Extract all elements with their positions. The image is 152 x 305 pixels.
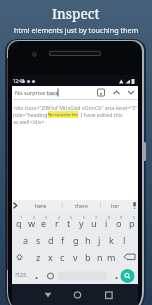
button[interactable]: a <box>20 231 31 248</box>
staticText: j <box>98 234 101 246</box>
staticText: 7 <box>95 215 98 220</box>
staticText: e <box>41 217 47 229</box>
staticText: i <box>105 217 108 229</box>
staticText: a <box>23 234 29 246</box>
button[interactable]: 3 <box>38 214 49 231</box>
staticText: 9 <box>120 215 123 220</box>
button[interactable]: 9 <box>113 214 124 231</box>
staticText: 2 <box>33 215 36 220</box>
staticText: here <box>35 202 47 209</box>
button[interactable]: c <box>57 248 68 265</box>
staticText: x <box>48 251 53 263</box>
button[interactable]: v <box>70 248 81 265</box>
button[interactable]: 7 <box>88 214 99 231</box>
staticText: h <box>85 234 91 246</box>
button[interactable]: here <box>20 200 62 211</box>
staticText: her <box>111 202 120 209</box>
staticText: l <box>123 234 126 246</box>
staticText: q <box>16 217 22 229</box>
button[interactable]: f <box>57 231 68 248</box>
staticText: y <box>79 217 84 229</box>
staticText: g <box>73 234 79 246</box>
staticText: p <box>129 217 135 229</box>
staticText: 6 <box>83 215 86 220</box>
button[interactable]: m <box>106 248 117 265</box>
staticText: 8 <box>108 215 111 220</box>
staticText: 1 <box>20 215 23 220</box>
staticText: No surprise here <box>15 89 59 96</box>
staticText: 4 <box>58 215 61 220</box>
button[interactable]: h <box>82 231 93 248</box>
button[interactable]: g <box>70 231 81 248</box>
staticText: v <box>73 251 78 263</box>
staticText: No surprise here <box>48 112 78 118</box>
button[interactable]: there <box>62 200 100 211</box>
button[interactable] <box>96 284 138 305</box>
button[interactable]: z <box>33 248 44 265</box>
button[interactable]: No surprise here <box>12 86 138 99</box>
staticText: Inspect <box>52 5 100 23</box>
staticText: f <box>61 234 65 246</box>
button[interactable]: 8 <box>101 214 112 231</box>
button[interactable]: 2 <box>26 214 37 231</box>
button[interactable]: her <box>100 200 131 211</box>
button[interactable]: 0 <box>126 214 137 231</box>
staticText: k <box>109 234 114 246</box>
button[interactable]: 1 <box>13 214 24 231</box>
staticText: c <box>60 251 65 263</box>
button[interactable] <box>12 284 54 305</box>
staticText: n <box>97 251 103 263</box>
button[interactable]: s <box>33 231 44 248</box>
button[interactable] <box>54 284 96 305</box>
button[interactable]: b <box>82 248 93 265</box>
button[interactable]: d <box>45 231 56 248</box>
button[interactable]: n <box>94 248 105 265</box>
staticText: 3 <box>45 215 48 220</box>
staticText: <div class="2lBHuf MUxGbd vOnnCb" aria-l… <box>13 104 138 111</box>
staticText: w <box>28 217 36 229</box>
staticText: role="heading"> <box>13 111 48 118</box>
button[interactable]: j <box>94 231 105 248</box>
staticText: m <box>107 251 116 263</box>
staticText: ?123 <box>15 272 26 279</box>
staticText: u <box>91 217 97 229</box>
staticText: html elements just by touching them <box>14 25 139 35</box>
staticText: . I have edited this <box>78 111 123 118</box>
staticText: z <box>36 251 41 263</box>
button[interactable]: l <box>119 231 130 248</box>
staticText: d <box>48 234 54 246</box>
button[interactable]: 5 <box>63 214 74 231</box>
staticText: r <box>55 217 59 229</box>
staticText: s <box>36 234 41 246</box>
staticText: there <box>75 202 88 209</box>
staticText: as well</div> <box>13 118 45 125</box>
staticText: o <box>116 217 122 229</box>
staticText: 5 <box>70 215 73 220</box>
staticText: t <box>67 217 71 229</box>
staticText: b <box>85 251 91 263</box>
button[interactable]: k <box>106 231 117 248</box>
staticText: 0 <box>133 215 136 220</box>
button[interactable]: 6 <box>76 214 87 231</box>
button[interactable]: x <box>45 248 56 265</box>
staticText: 12:43 <box>13 78 25 84</box>
button[interactable]: 4 <box>51 214 62 231</box>
